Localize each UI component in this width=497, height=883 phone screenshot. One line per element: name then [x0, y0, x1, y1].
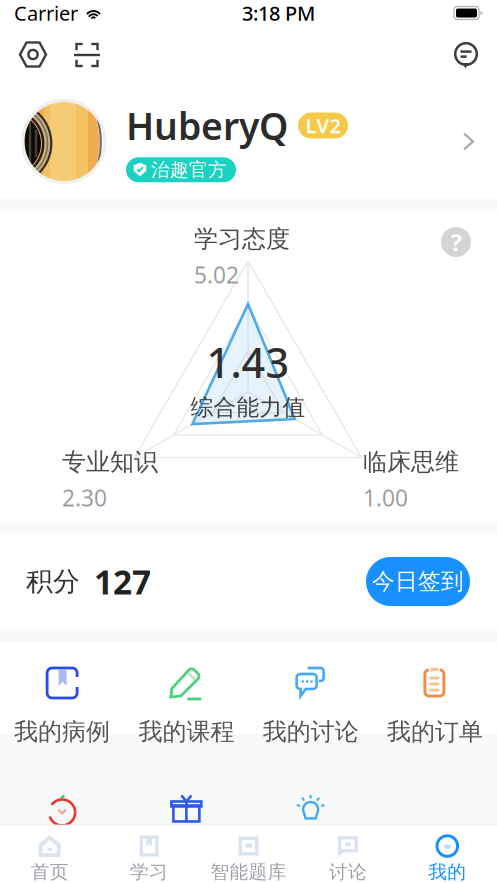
button[interactable]: Help: [441, 227, 471, 257]
staticText: 首页: [31, 860, 69, 883]
staticText: 我的: [428, 860, 466, 883]
staticText: HuberyQ: [126, 101, 288, 150]
button[interactable]: Messages: [452, 41, 480, 69]
staticText: 学习: [130, 860, 168, 883]
staticText: 5.02: [194, 260, 239, 290]
button[interactable]: 讨论: [298, 833, 398, 883]
staticText: 3:18 PM: [242, 0, 315, 26]
button[interactable]: 智能题库: [199, 833, 298, 883]
staticText: 127: [94, 559, 151, 604]
button[interactable]: 我的病例: [0, 665, 124, 746]
button[interactable]: 学习: [99, 833, 199, 883]
staticText: 我的病例: [14, 717, 110, 746]
button[interactable]: Scan: [72, 40, 102, 69]
button[interactable]: 首页: [0, 833, 99, 883]
button[interactable]: 我的讨论: [248, 665, 373, 746]
button[interactable]: 我的: [398, 833, 497, 883]
button[interactable]: 我的订单: [373, 665, 497, 746]
button[interactable]: [248, 791, 373, 821]
staticText: Carrier: [14, 0, 78, 26]
button[interactable]: HuberyQ: [0, 84, 497, 199]
button[interactable]: 我的课程: [124, 665, 248, 746]
staticText: 综合能力值: [190, 393, 305, 421]
button[interactable]: Settings: [16, 39, 50, 71]
staticText: 讨论: [329, 860, 367, 883]
staticText: 1.43: [206, 335, 289, 389]
staticText: 治趣官方: [151, 158, 227, 181]
staticText: ?: [450, 226, 461, 258]
staticText: 智能题库: [210, 860, 286, 883]
button[interactable]: 今日签到: [366, 557, 470, 606]
staticText: LV2: [305, 112, 340, 139]
staticText: 今日签到: [372, 568, 464, 595]
staticText: 我的课程: [138, 717, 234, 746]
staticText: 积分: [26, 565, 80, 598]
button[interactable]: [0, 791, 124, 821]
staticText: 我的订单: [387, 717, 483, 746]
staticText: 1.00: [363, 483, 408, 513]
staticText: 专业知识: [62, 447, 158, 477]
staticText: 学习态度: [194, 224, 290, 254]
staticText: 临床思维: [363, 447, 459, 477]
button[interactable]: [124, 791, 248, 821]
staticText: 我的讨论: [263, 717, 359, 746]
staticText: 2.30: [62, 483, 107, 513]
